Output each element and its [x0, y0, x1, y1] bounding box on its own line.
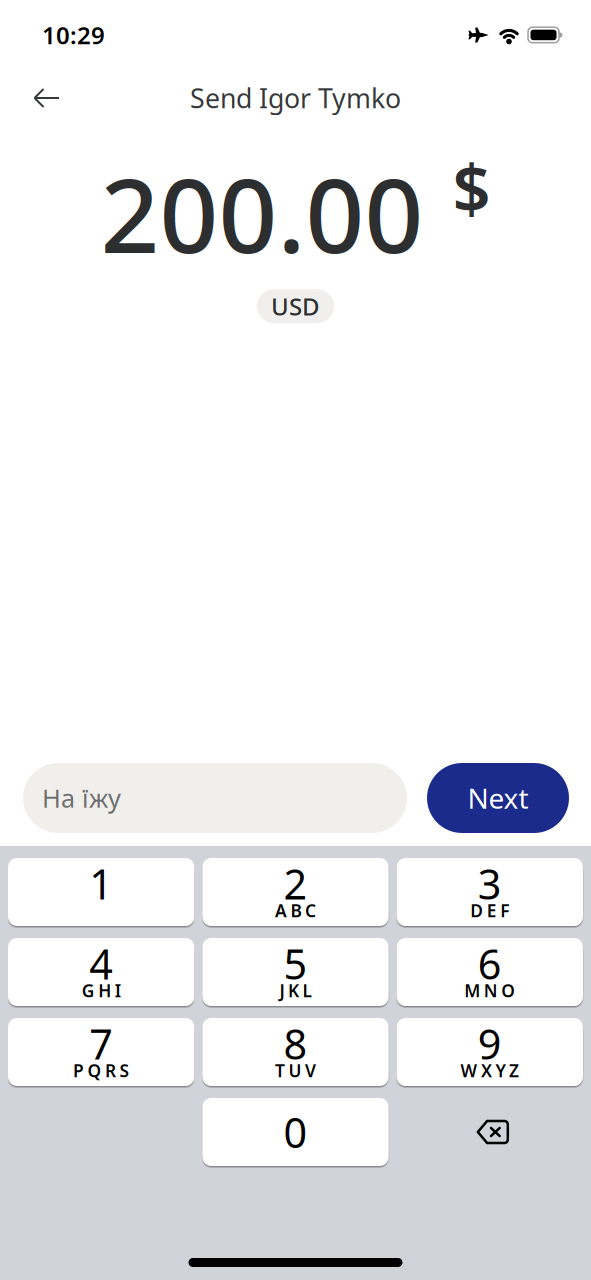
staticText: Send Igor Tymko — [190, 80, 401, 116]
button[interactable]: 5 — [202, 938, 389, 1006]
staticText: ABC — [275, 899, 316, 922]
staticText: TUV — [275, 1059, 316, 1082]
staticText: На їжу — [42, 781, 121, 815]
staticText: PQRS — [73, 1059, 129, 1082]
button[interactable]: Delete — [397, 1098, 583, 1166]
staticText: 6 — [478, 936, 502, 991]
staticText: JKL — [279, 979, 311, 1002]
staticText: 200.00 — [100, 145, 423, 281]
staticText: 8 — [283, 1016, 307, 1071]
button[interactable]: 6 — [397, 938, 583, 1006]
button[interactable]: 3 — [397, 858, 583, 926]
staticText: USD — [271, 290, 320, 322]
button[interactable]: 4 — [8, 938, 194, 1006]
button[interactable]: 9 — [397, 1018, 583, 1086]
staticText: 7 — [89, 1016, 113, 1071]
staticText: 2 — [283, 856, 307, 911]
staticText: 3 — [478, 856, 502, 911]
button[interactable]: 2 — [202, 858, 389, 926]
button[interactable]: 7 — [8, 1018, 194, 1086]
staticText: MNO — [464, 979, 515, 1002]
staticText: GHI — [82, 979, 121, 1002]
button[interactable]: Next — [427, 763, 569, 833]
button[interactable]: На їжу — [23, 763, 407, 833]
staticText: 0 — [283, 1105, 307, 1159]
staticText: 1 — [89, 856, 113, 911]
staticText: 5 — [283, 936, 307, 991]
staticText: 9 — [478, 1016, 502, 1071]
button[interactable]: 8 — [202, 1018, 389, 1086]
button[interactable]: 1 — [8, 858, 194, 926]
button[interactable]: 0 — [202, 1098, 389, 1166]
staticText: 4 — [89, 936, 113, 991]
staticText: Next — [467, 779, 528, 817]
staticText: WXYZ — [461, 1059, 519, 1082]
staticText: $ — [452, 143, 490, 231]
button[interactable]: Back — [0, 77, 60, 118]
staticText: 10:29 — [42, 19, 105, 51]
staticText: DEF — [470, 899, 509, 922]
button[interactable]: USD — [257, 289, 334, 323]
